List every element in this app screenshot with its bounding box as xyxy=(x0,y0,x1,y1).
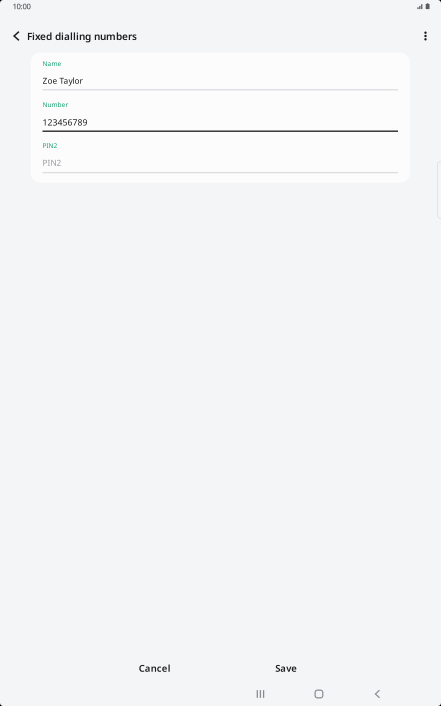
button[interactable]: More options xyxy=(414,24,436,48)
staticText: 10:00 xyxy=(12,1,30,11)
button[interactable]: Save xyxy=(220,653,352,683)
staticText: Fixed dialling numbers xyxy=(27,29,137,43)
button[interactable]: Back xyxy=(348,684,407,704)
button[interactable]: Home xyxy=(290,684,348,704)
staticText: Zoe Taylor xyxy=(42,75,82,86)
staticText: Number xyxy=(42,100,68,109)
staticText: Save xyxy=(275,662,297,674)
button[interactable]: Recent apps xyxy=(231,684,290,704)
staticText: 123456789 xyxy=(42,116,87,128)
staticText: Name xyxy=(42,59,61,68)
staticText: Cancel xyxy=(139,662,171,674)
button[interactable]: Back xyxy=(5,24,27,48)
staticText: PIN2 xyxy=(42,141,57,150)
staticText: PIN2 xyxy=(42,157,61,168)
button[interactable]: Cancel xyxy=(89,653,220,683)
